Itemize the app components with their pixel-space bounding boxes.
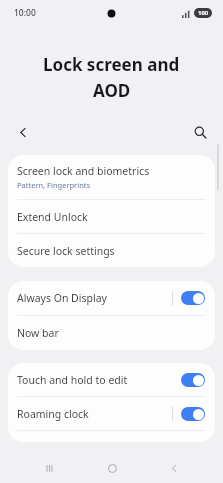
button[interactable]: Recents xyxy=(36,455,62,481)
button[interactable]: Always On Display xyxy=(8,281,215,315)
staticText: 100 xyxy=(198,9,209,17)
button[interactable]: Roaming clock xyxy=(8,397,215,430)
staticText: Pattern, Fingerprints xyxy=(17,180,91,190)
staticText: 10:00 xyxy=(14,7,36,19)
button[interactable]: Roaming clock switch, on xyxy=(181,407,205,421)
staticText: Now bar xyxy=(17,326,59,340)
button[interactable]: Now bar xyxy=(8,316,215,350)
staticText: Roaming clock xyxy=(17,407,172,421)
staticText: Touch and hold to edit xyxy=(17,373,181,387)
button[interactable]: Extend Unlock xyxy=(8,200,215,233)
button[interactable]: Touch and hold to edit switch, on xyxy=(181,373,205,387)
button[interactable]: Back xyxy=(161,455,187,481)
button[interactable]: Touch and hold to edit xyxy=(8,363,215,396)
button[interactable]: Secure lock settings xyxy=(8,234,215,267)
staticText: Extend Unlock xyxy=(17,210,88,224)
button[interactable]: Always On Display switch, on xyxy=(181,291,205,305)
staticText: Always On Display xyxy=(17,291,172,305)
staticText: Secure lock settings xyxy=(17,244,115,258)
button[interactable]: Screen lock and biometrics xyxy=(8,155,215,199)
button[interactable]: Home xyxy=(99,455,125,481)
button[interactable]: Back xyxy=(8,117,38,147)
staticText: Screen lock and biometrics xyxy=(17,164,150,178)
staticText: Lock screen and xyxy=(43,53,180,76)
staticText: AOD xyxy=(93,79,131,102)
button[interactable]: Search xyxy=(185,117,215,147)
